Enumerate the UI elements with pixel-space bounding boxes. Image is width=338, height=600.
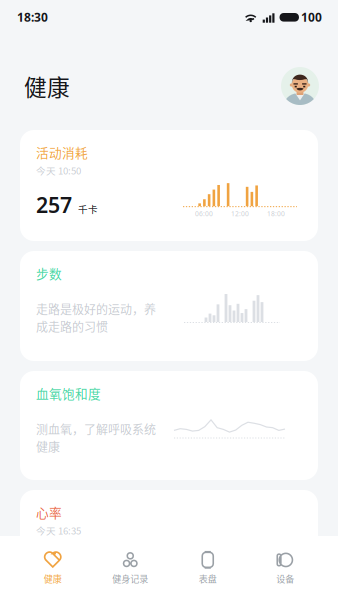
- button[interactable]: 步数: [20, 251, 318, 361]
- staticText: 健康: [24, 70, 70, 102]
- staticText: 健身记录: [112, 572, 148, 585]
- button[interactable]: 健身记录: [91, 542, 169, 594]
- staticText: 步数: [36, 264, 62, 282]
- staticText: 12:00: [231, 209, 249, 218]
- staticText: 257: [36, 191, 72, 219]
- staticText: 100: [301, 9, 322, 25]
- staticText: 06:00: [195, 209, 213, 218]
- staticText: 18:30: [17, 9, 48, 25]
- button[interactable]: 个人资料: [281, 67, 319, 105]
- staticText: 18:00: [267, 209, 285, 218]
- button[interactable]: 活动消耗: [20, 130, 318, 241]
- button[interactable]: 设备: [246, 542, 324, 594]
- staticText: 走路是极好的运动，养成走路的习惯: [36, 300, 156, 335]
- staticText: 活动消耗: [36, 143, 88, 161]
- button[interactable]: 心率: [20, 490, 318, 590]
- staticText: 今天 10:50: [36, 163, 81, 177]
- staticText: 今天 16:35: [36, 523, 81, 537]
- button[interactable]: 健康: [14, 542, 91, 594]
- button[interactable]: 血氧饱和度: [20, 371, 318, 480]
- staticText: 心率: [36, 503, 62, 521]
- staticText: 设备: [276, 572, 294, 585]
- staticText: 千卡: [78, 202, 98, 216]
- staticText: 测血氧，了解呼吸系统健康: [36, 420, 156, 455]
- button[interactable]: 表盘: [169, 542, 246, 594]
- staticText: 血氧饱和度: [36, 384, 101, 402]
- staticText: 健康: [44, 572, 62, 585]
- staticText: 表盘: [199, 572, 217, 585]
